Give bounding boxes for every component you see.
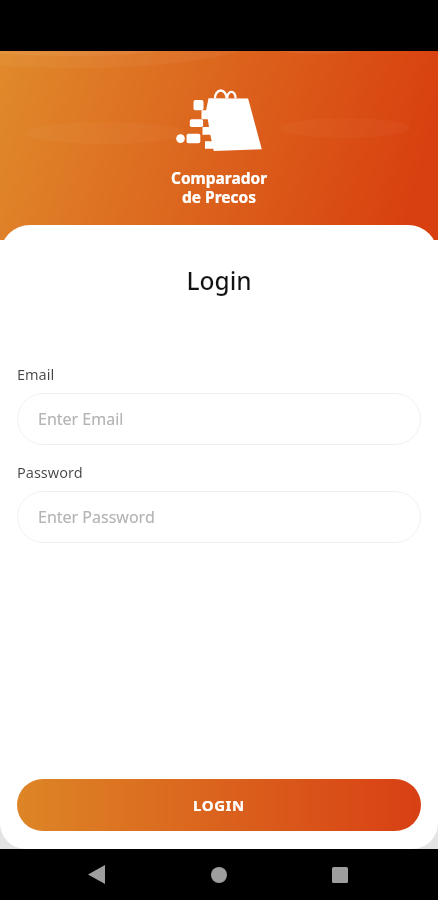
button[interactable]: Home bbox=[195, 849, 243, 900]
staticText: Comparador de Precos bbox=[0, 167, 438, 207]
staticText: Enter Email bbox=[38, 408, 124, 430]
button[interactable]: LOGIN bbox=[17, 779, 421, 831]
staticText: Email bbox=[17, 364, 55, 384]
staticText: Login bbox=[0, 264, 438, 297]
staticText: Password bbox=[17, 462, 83, 482]
button[interactable]: Enter Email bbox=[17, 393, 421, 445]
staticText: LOGIN bbox=[193, 795, 245, 815]
button[interactable]: Recents bbox=[316, 849, 364, 900]
staticText: Enter Password bbox=[38, 506, 155, 528]
button[interactable]: Enter Password bbox=[17, 491, 421, 543]
button[interactable]: Back bbox=[72, 849, 120, 900]
